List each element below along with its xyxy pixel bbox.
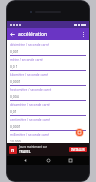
staticText: 0,004 [10, 94, 19, 99]
staticText: décimètre / seconde carré [10, 43, 49, 47]
button[interactable]: centimètre / seconde carré [10, 116, 86, 131]
button[interactable]: More options [78, 29, 89, 40]
staticText: 0,01 [10, 109, 17, 114]
staticText: 10 000 [10, 139, 21, 142]
staticText: centimètre / seconde carré [10, 118, 51, 122]
staticText: hectomètre / seconde carré [10, 88, 52, 92]
staticText: 0,0 1 [10, 64, 18, 69]
button[interactable]: décimètre / seconde carré [10, 41, 86, 56]
staticText: millimètre / seconde carré [10, 133, 50, 137]
staticText: INSTALLER [71, 148, 85, 152]
button[interactable]: Back [7, 29, 18, 40]
button[interactable]: kilomètre / seconde carré [10, 71, 86, 86]
button[interactable]: n [7, 143, 89, 156]
button[interactable]: millimètre / seconde carré [10, 131, 86, 142]
button[interactable]: INSTALLER [69, 147, 87, 152]
button[interactable]: Recent apps [66, 156, 75, 165]
staticText: 0,001 [10, 49, 19, 54]
button[interactable]: décamètre / seconde carré [10, 101, 86, 116]
staticText: 0,0001 [10, 124, 21, 129]
button[interactable]: Add [76, 129, 83, 136]
staticText: mètre / seconde carré [10, 58, 43, 62]
staticText: TRAVEL [19, 150, 31, 154]
staticText: décamètre / seconde carré [10, 103, 50, 107]
button[interactable]: mètre / seconde carré [10, 56, 86, 71]
staticText: accélération [18, 31, 78, 38]
button[interactable]: Back [21, 156, 30, 165]
staticText: 0,0001 [10, 79, 21, 84]
staticText: kilomètre / seconde carré [10, 73, 49, 77]
button[interactable]: hectomètre / seconde carré [10, 86, 86, 101]
staticText: n [11, 147, 15, 154]
button[interactable]: Home [44, 156, 53, 165]
staticText: Jouez maintenant sur [19, 145, 47, 149]
